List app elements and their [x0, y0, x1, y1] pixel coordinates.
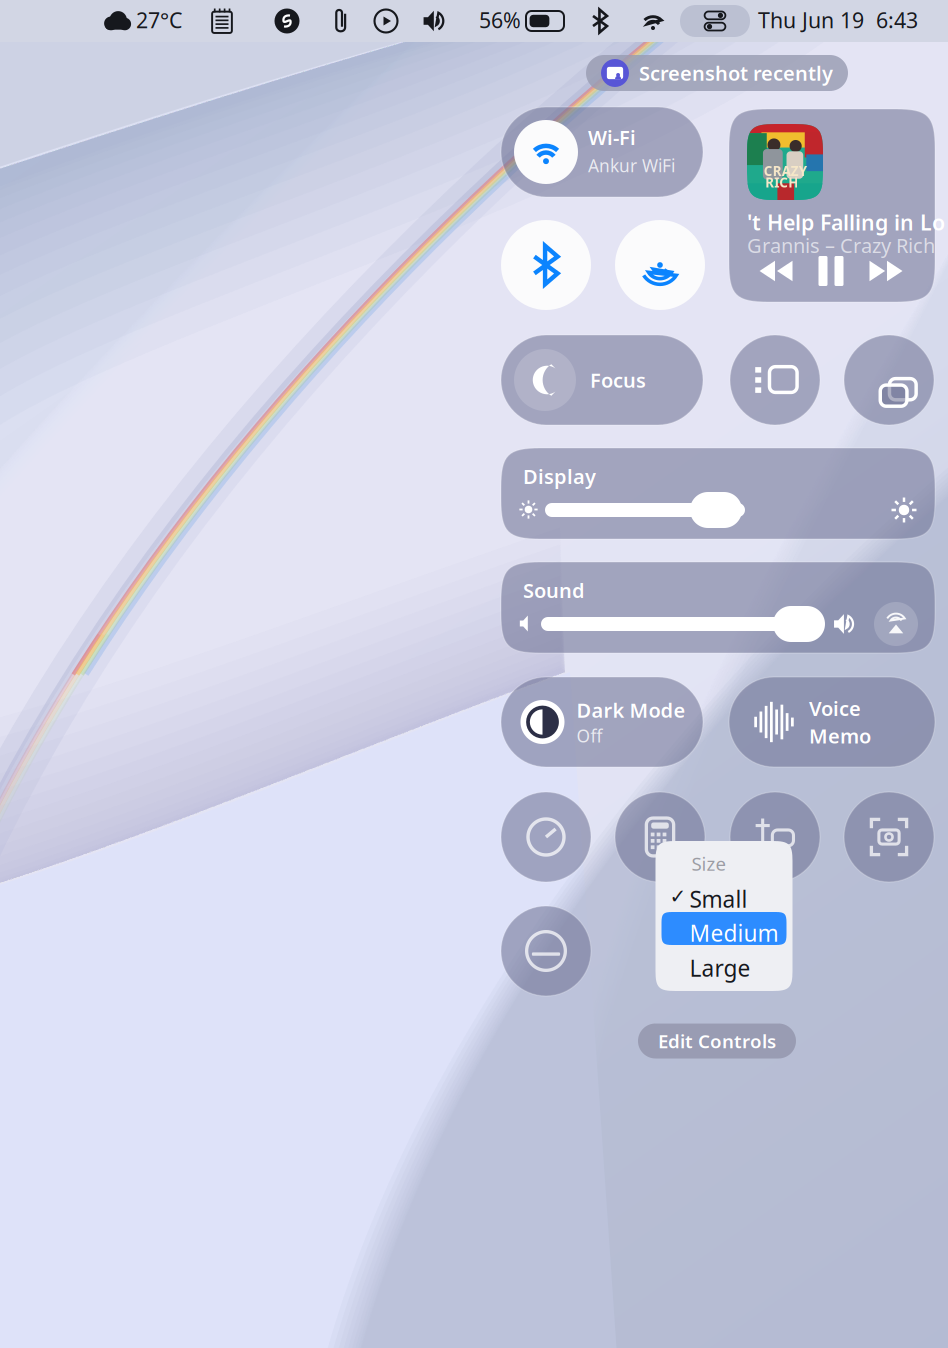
button[interactable]: Screen Mirroring	[844, 335, 934, 425]
button[interactable]: Stage Manager	[730, 335, 820, 425]
staticText: Ankur WiFi	[588, 154, 675, 177]
staticText: Large	[689, 953, 750, 983]
button[interactable]: Medium	[661, 912, 786, 945]
staticText: 27°C	[136, 6, 182, 34]
button[interactable]: Calculator	[615, 792, 705, 882]
staticText: 56%	[479, 6, 521, 34]
button[interactable]: Voice	[729, 677, 935, 767]
button[interactable]: Keyboard Brightness	[730, 792, 820, 882]
staticText: Memo	[809, 722, 871, 749]
staticText: Dark Mode	[576, 697, 685, 723]
button[interactable]: Dark Mode	[501, 677, 703, 767]
staticText: ✓	[669, 885, 686, 908]
button[interactable]: Do Not Disturb	[501, 906, 591, 996]
staticText: Edit Controls	[658, 1029, 776, 1053]
staticText: Medium	[689, 918, 778, 948]
button[interactable]: Wi-Fi	[501, 107, 703, 197]
staticText: Display	[523, 463, 596, 490]
staticText: Voice	[809, 695, 861, 721]
button[interactable]: Fast forward	[863, 253, 909, 289]
button[interactable]: Timer	[501, 792, 591, 882]
staticText: Size	[691, 851, 726, 876]
button[interactable]: Screenshot	[844, 792, 934, 882]
button[interactable]: Bluetooth	[501, 220, 591, 310]
button[interactable]: AirDrop	[615, 220, 705, 310]
staticText: Small	[689, 884, 747, 914]
staticText: Screenshot recently	[639, 60, 833, 86]
button[interactable]: Display brightness	[545, 492, 893, 528]
button[interactable]: Audio output	[874, 602, 918, 646]
staticText: Off	[576, 724, 602, 747]
staticText: RICH	[765, 173, 798, 191]
staticText: CRAZY	[764, 162, 807, 180]
staticText: Wi-Fi	[588, 124, 636, 151]
staticText: Thu Jun 19 6:43	[758, 6, 918, 34]
staticText: Focus	[590, 367, 646, 393]
button[interactable]: Pause	[808, 253, 854, 289]
button[interactable]: Focus	[501, 335, 703, 425]
button[interactable]: Rewind	[753, 253, 799, 289]
staticText: Grannis – Crazy Rich	[747, 232, 940, 259]
button[interactable]: Edit Controls	[638, 1023, 796, 1058]
staticText: Sound	[523, 577, 585, 604]
button[interactable]: Large	[661, 948, 786, 979]
button[interactable]: ✓	[661, 879, 786, 910]
button[interactable]: Volume	[541, 606, 833, 642]
staticText: 't Help Falling in Lo	[747, 208, 945, 236]
button[interactable]: Screenshot recently	[586, 55, 848, 91]
